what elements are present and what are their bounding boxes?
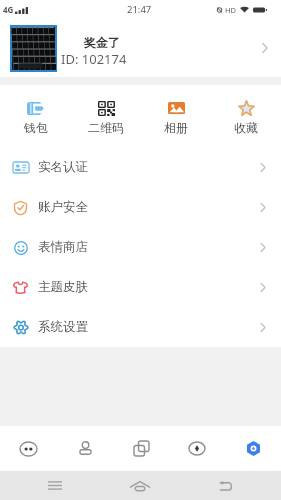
staticText: 主题皮肤: [38, 279, 88, 295]
button[interactable]: 收藏: [211, 85, 281, 147]
button[interactable]: Contacts: [57, 426, 113, 471]
staticText: 钱包: [24, 120, 48, 135]
staticText: 系统设置: [38, 319, 88, 335]
button[interactable]: 钱包: [0, 85, 71, 147]
button[interactable]: Discover: [169, 426, 225, 471]
button[interactable]: 二维码: [71, 85, 141, 147]
button[interactable]: Back: [204, 471, 246, 500]
staticText: 21:47: [127, 3, 152, 16]
button[interactable]: 系统设置: [0, 307, 281, 347]
button[interactable]: 主题皮肤: [0, 267, 281, 307]
staticText: HD: [225, 5, 237, 15]
button[interactable]: 表情商店: [0, 227, 281, 267]
staticText: 实名认证: [38, 159, 88, 175]
button[interactable]: 奖金了: [0, 19, 281, 77]
button[interactable]: 相册: [141, 85, 211, 147]
staticText: 账户安全: [38, 199, 88, 215]
button[interactable]: Messages: [0, 426, 57, 471]
button[interactable]: Clipboard: [113, 426, 169, 471]
button[interactable]: Menu: [34, 471, 76, 500]
staticText: 4G: [3, 4, 14, 15]
button[interactable]: 账户安全: [0, 187, 281, 227]
staticText: ID: 102174: [61, 50, 127, 68]
button[interactable]: Home: [119, 471, 161, 500]
staticText: 二维码: [88, 120, 124, 135]
staticText: 收藏: [234, 120, 258, 135]
staticText: 表情商店: [38, 239, 88, 255]
staticText: 奖金了: [84, 35, 120, 50]
button[interactable]: 实名认证: [0, 147, 281, 187]
button[interactable]: Settings: [225, 426, 281, 471]
staticText: 相册: [164, 120, 188, 135]
